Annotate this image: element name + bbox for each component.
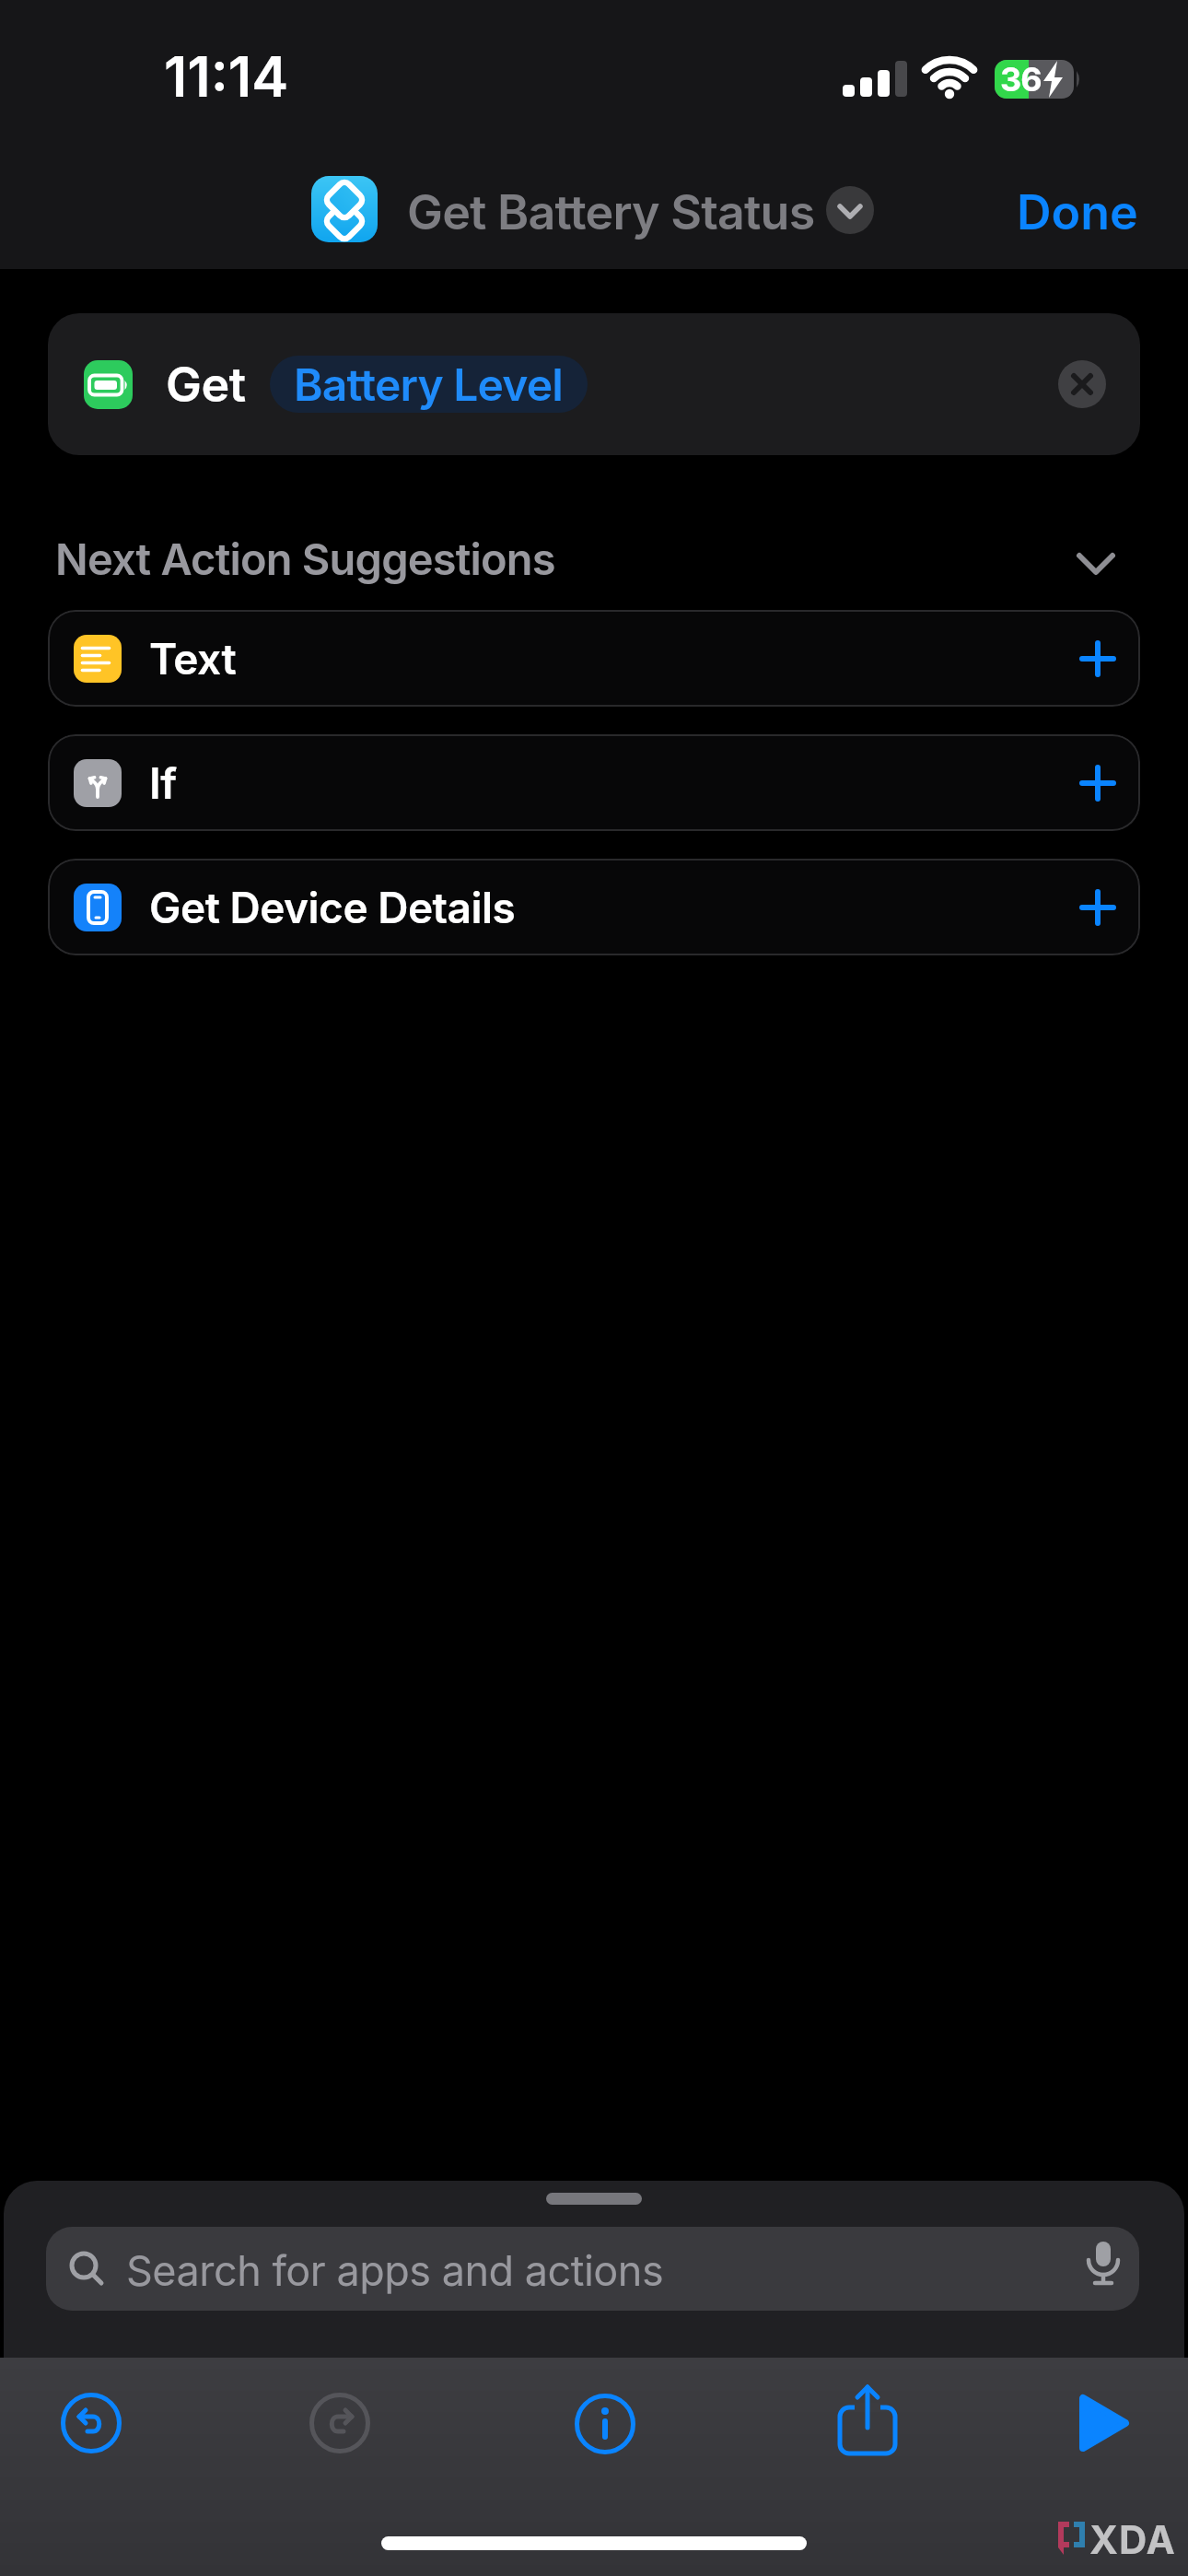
staticText: If [149, 757, 177, 809]
button[interactable] [63, 2395, 120, 2452]
staticText: Text [149, 633, 237, 685]
staticText: 36 [1000, 59, 1042, 100]
staticText: Get Battery Status [407, 183, 815, 241]
button[interactable] [48, 610, 1140, 707]
staticText: 11:14 [164, 43, 289, 111]
staticText: XDA [1089, 2516, 1176, 2563]
staticText: Get Device Details [149, 882, 516, 933]
button[interactable] [826, 186, 874, 234]
button[interactable] [1077, 2395, 1133, 2452]
button[interactable]: Get [48, 313, 1140, 455]
button[interactable] [1058, 360, 1106, 408]
staticText: Search for apps and actions [126, 2245, 664, 2295]
button[interactable] [577, 2395, 634, 2453]
button[interactable]: Done [1004, 175, 1156, 244]
button[interactable]: Search for apps and actions [46, 2227, 1139, 2311]
staticText: Get [166, 356, 246, 414]
button[interactable] [48, 734, 1140, 831]
staticText: Next Action Suggestions [55, 533, 555, 585]
staticText: Battery Level [294, 357, 564, 411]
button[interactable] [48, 859, 1140, 955]
button[interactable] [311, 2395, 368, 2452]
button[interactable] [821, 2376, 914, 2468]
staticText: Done [1017, 183, 1138, 241]
